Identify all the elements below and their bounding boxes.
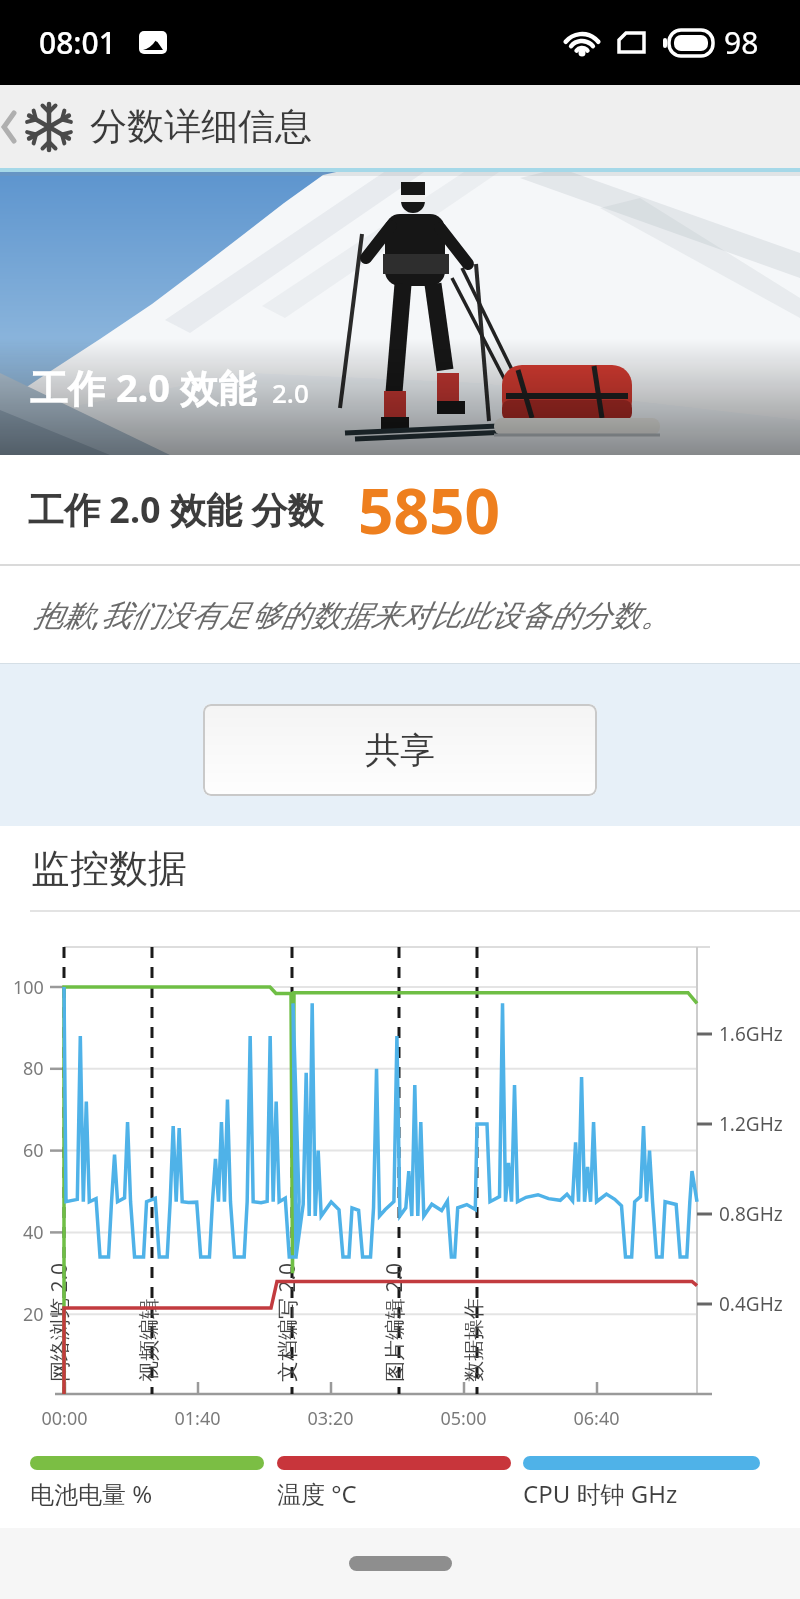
staticText: 抱歉,我们没有足够的数据来对比此设备的分数。 — [33, 594, 671, 635]
button[interactable]: 分数详细信息 — [0, 85, 800, 168]
staticText: 监控数据 — [31, 844, 187, 893]
staticText: 分数详细信息 — [90, 103, 312, 150]
staticText: 共享 — [365, 728, 435, 772]
staticText: 98 — [724, 22, 759, 63]
button[interactable]: 共享 — [203, 704, 597, 796]
staticText: 2.0 — [272, 375, 309, 410]
staticText: 电池电量 % — [30, 1477, 153, 1510]
staticText: 工作 2.0 效能 — [30, 361, 256, 413]
staticText: CPU 时钟 GHz — [523, 1477, 678, 1510]
staticText: 工作 2.0 效能 分数 — [28, 485, 324, 534]
staticText: 08:01 — [39, 22, 116, 63]
staticText: 5850 — [358, 468, 500, 552]
staticText: 温度 °C — [277, 1477, 357, 1510]
